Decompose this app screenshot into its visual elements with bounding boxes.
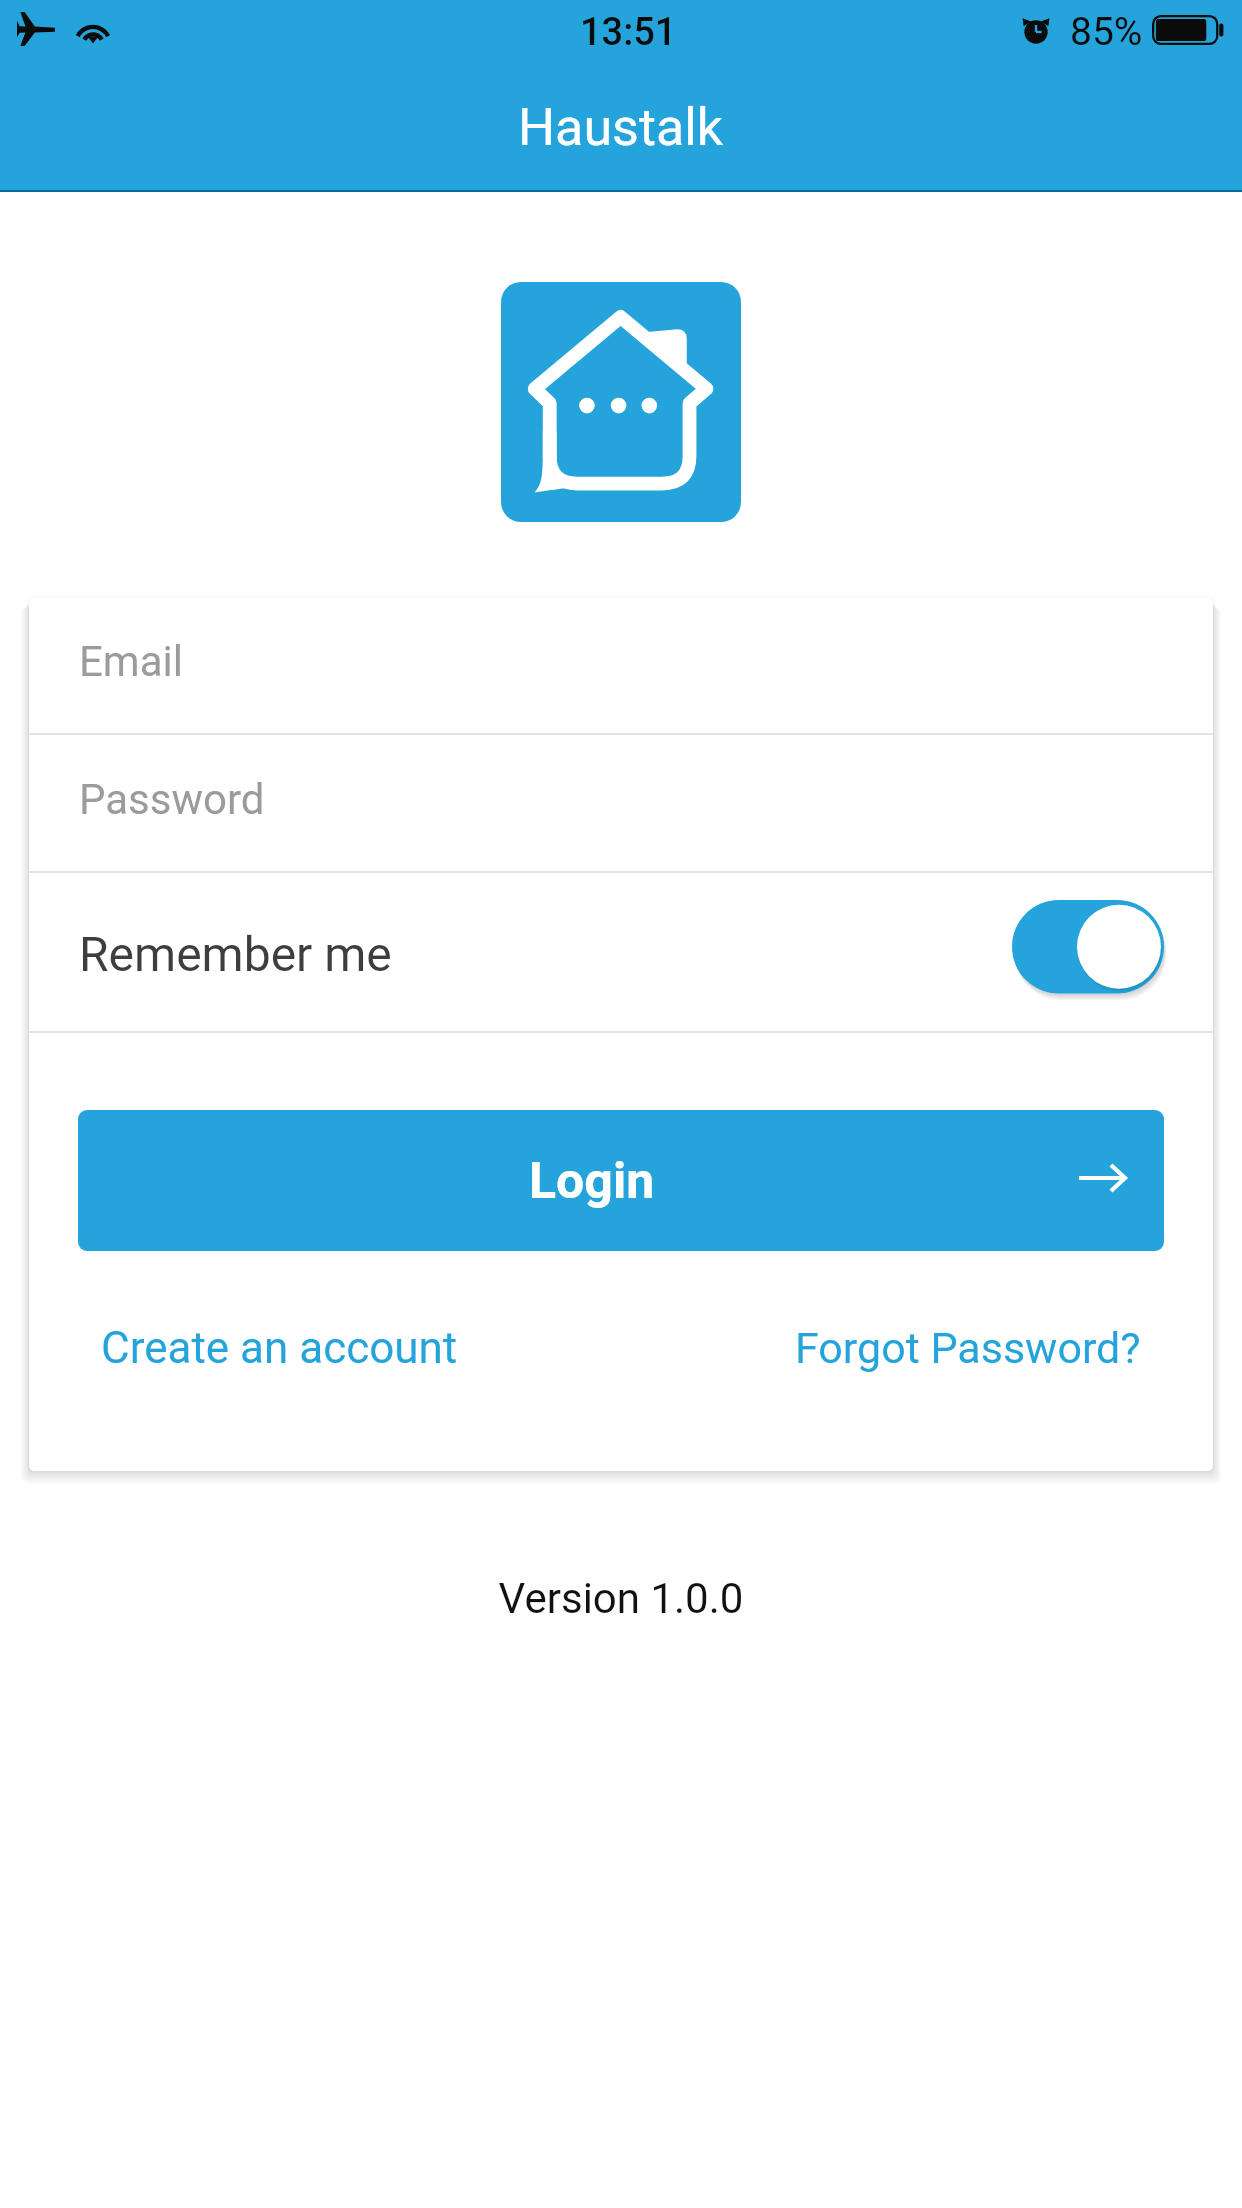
staticText: Email: [79, 637, 183, 686]
staticText: Version 1.0.0: [0, 1574, 1242, 1623]
button[interactable]: Remember me: [29, 873, 1213, 1031]
button[interactable]: Forgot Password?: [795, 1323, 1141, 1373]
button[interactable]: Remember me: [1012, 900, 1164, 1004]
button[interactable]: Password: [29, 735, 1213, 871]
other: Battery 85 percent: [1152, 15, 1227, 45]
staticText: Haustalk: [518, 97, 724, 158]
button[interactable]: Email: [29, 598, 1213, 733]
staticText: Forgot Password?: [795, 1323, 1141, 1373]
other: Airplane mode: [17, 12, 55, 46]
staticText: 85%: [1070, 9, 1143, 55]
staticText: Create an account: [101, 1322, 458, 1374]
staticText: 13:51: [580, 10, 677, 55]
button[interactable]: Create an account: [101, 1322, 458, 1374]
staticText: Login: [529, 1152, 655, 1211]
staticText: Password: [79, 775, 265, 824]
other: Alarm set: [1020, 14, 1052, 43]
other: Wi-Fi: [74, 14, 112, 42]
staticText: Remember me: [79, 926, 392, 982]
button[interactable]: Login: [78, 1110, 1164, 1251]
